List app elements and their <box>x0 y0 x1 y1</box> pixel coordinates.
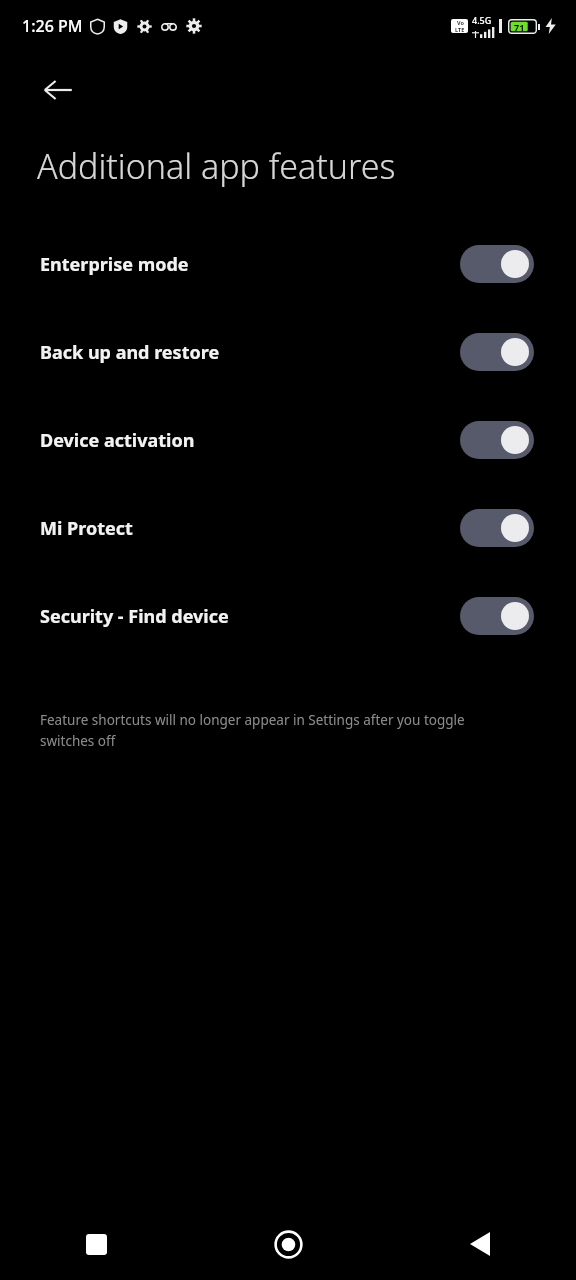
button[interactable]: Back <box>384 1208 576 1280</box>
button[interactable]: Mi Protect <box>0 500 576 556</box>
staticText: 71 <box>514 21 525 33</box>
button[interactable]: Device activation <box>0 412 576 468</box>
staticText: Additional app features <box>37 143 396 189</box>
staticText: Mi Protect <box>40 516 460 541</box>
button[interactable]: Security - Find device <box>0 588 576 644</box>
staticText: Feature shortcuts will no longer appear … <box>40 711 512 750</box>
button[interactable]: Toggle <box>460 421 534 459</box>
staticText: Security - Find device <box>40 604 460 629</box>
staticText: Device activation <box>40 428 460 453</box>
staticText: LTE <box>455 26 465 33</box>
button[interactable]: Recent apps <box>0 1208 192 1280</box>
button[interactable]: Home <box>192 1208 384 1280</box>
staticText: Enterprise mode <box>40 252 460 277</box>
staticText: 4.5G <box>472 14 492 26</box>
button[interactable]: Toggle <box>460 245 534 283</box>
button[interactable]: Back up and restore <box>0 324 576 380</box>
staticText: Back up and restore <box>40 340 460 365</box>
staticText: Vo <box>457 19 464 26</box>
button[interactable]: Toggle <box>460 597 534 635</box>
button[interactable]: Back <box>30 62 86 118</box>
button[interactable]: Toggle <box>460 333 534 371</box>
button[interactable]: Toggle <box>460 509 534 547</box>
button[interactable]: Enterprise mode <box>0 236 576 292</box>
staticText: 1:26 PM <box>22 15 83 37</box>
